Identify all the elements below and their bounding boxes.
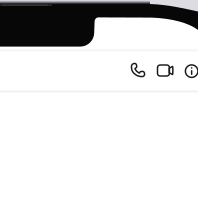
button[interactable]: Details [180,60,198,82]
button[interactable]: Audio call [126,58,150,82]
button[interactable]: FaceTime [152,60,177,81]
